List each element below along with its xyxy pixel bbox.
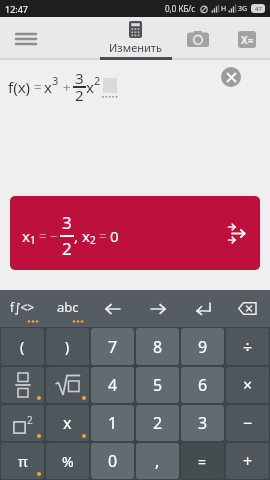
button[interactable] bbox=[136, 328, 179, 365]
button[interactable] bbox=[90, 290, 135, 327]
staticText: abc bbox=[57, 298, 79, 316]
staticText: 7 bbox=[108, 336, 118, 358]
button[interactable] bbox=[46, 367, 89, 403]
button[interactable]: X= bbox=[236, 28, 258, 50]
staticText: + bbox=[243, 450, 253, 472]
staticText: X= bbox=[241, 33, 254, 47]
button[interactable] bbox=[181, 328, 224, 365]
button[interactable] bbox=[1, 443, 44, 479]
button[interactable] bbox=[1, 367, 44, 403]
button[interactable] bbox=[136, 443, 179, 479]
staticText: = bbox=[34, 78, 42, 96]
staticText: 2 bbox=[153, 412, 163, 434]
button[interactable] bbox=[1, 405, 44, 441]
staticText: 1 bbox=[30, 233, 36, 247]
button[interactable] bbox=[136, 405, 179, 441]
button[interactable]: Изменить bbox=[109, 21, 162, 55]
button[interactable] bbox=[1, 328, 44, 365]
button[interactable] bbox=[226, 443, 269, 479]
staticText: 6 bbox=[198, 374, 208, 396]
button[interactable]: abc bbox=[45, 290, 90, 327]
button[interactable] bbox=[91, 443, 134, 479]
staticText: , bbox=[74, 226, 79, 246]
staticText: 2 bbox=[62, 237, 72, 260]
button[interactable] bbox=[180, 290, 225, 327]
button[interactable] bbox=[46, 405, 89, 441]
button[interactable] bbox=[91, 405, 134, 441]
staticText: % bbox=[62, 452, 74, 471]
button[interactable] bbox=[46, 328, 89, 365]
button[interactable] bbox=[226, 405, 269, 441]
button[interactable] bbox=[181, 405, 224, 441]
staticText: 0 bbox=[110, 226, 119, 246]
staticText: 3 bbox=[75, 68, 84, 88]
button[interactable] bbox=[181, 367, 224, 403]
staticText: 0 bbox=[108, 450, 118, 472]
staticText: ) bbox=[65, 337, 70, 356]
button[interactable] bbox=[135, 290, 180, 327]
staticText: H bbox=[221, 4, 227, 14]
staticText: ÷ bbox=[243, 336, 253, 358]
button[interactable] bbox=[186, 27, 210, 51]
button[interactable] bbox=[221, 67, 241, 87]
staticText: 3 bbox=[62, 211, 72, 234]
staticText: 2 bbox=[94, 73, 101, 88]
staticText: = bbox=[99, 227, 107, 245]
button[interactable] bbox=[91, 367, 134, 403]
button[interactable] bbox=[226, 367, 269, 403]
staticText: 4 bbox=[108, 374, 118, 396]
staticText: 47 bbox=[255, 5, 262, 13]
staticText: 3 bbox=[52, 73, 59, 88]
button[interactable]: x bbox=[10, 196, 260, 270]
staticText: f∫<> bbox=[10, 299, 35, 315]
staticText: f(x) bbox=[8, 77, 31, 97]
staticText: 1 bbox=[108, 412, 118, 434]
staticText: 0,0 КБ/с bbox=[165, 3, 196, 14]
staticText: + bbox=[63, 78, 71, 96]
staticText: = bbox=[198, 452, 207, 471]
staticText: Изменить bbox=[109, 40, 162, 55]
button[interactable] bbox=[91, 328, 134, 365]
staticText: 3G bbox=[238, 4, 248, 14]
staticText: π bbox=[18, 451, 28, 471]
staticText: 2 bbox=[75, 85, 84, 105]
staticText: x bbox=[44, 77, 52, 97]
staticText: × bbox=[243, 374, 253, 396]
button[interactable] bbox=[46, 443, 89, 479]
staticText: 3 bbox=[198, 412, 208, 434]
staticText: 9 bbox=[198, 336, 208, 358]
staticText: 5 bbox=[153, 374, 163, 396]
button[interactable]: f∫<> bbox=[0, 290, 45, 327]
staticText: − bbox=[50, 227, 58, 245]
staticText: = bbox=[39, 227, 47, 245]
button[interactable] bbox=[181, 443, 224, 479]
staticText: − bbox=[243, 412, 253, 434]
staticText: , bbox=[155, 450, 160, 472]
button[interactable] bbox=[226, 328, 269, 365]
staticText: x bbox=[82, 226, 90, 246]
button[interactable] bbox=[136, 367, 179, 403]
staticText: x bbox=[22, 226, 30, 246]
button[interactable] bbox=[16, 32, 36, 46]
staticText: x bbox=[63, 412, 72, 434]
staticText: ( bbox=[20, 337, 25, 356]
staticText: x bbox=[86, 77, 94, 97]
staticText: 2 bbox=[27, 413, 33, 427]
staticText: 12:47 bbox=[5, 3, 29, 15]
button[interactable] bbox=[225, 290, 270, 327]
staticText: 8 bbox=[153, 336, 163, 358]
staticText: 2 bbox=[90, 233, 96, 247]
